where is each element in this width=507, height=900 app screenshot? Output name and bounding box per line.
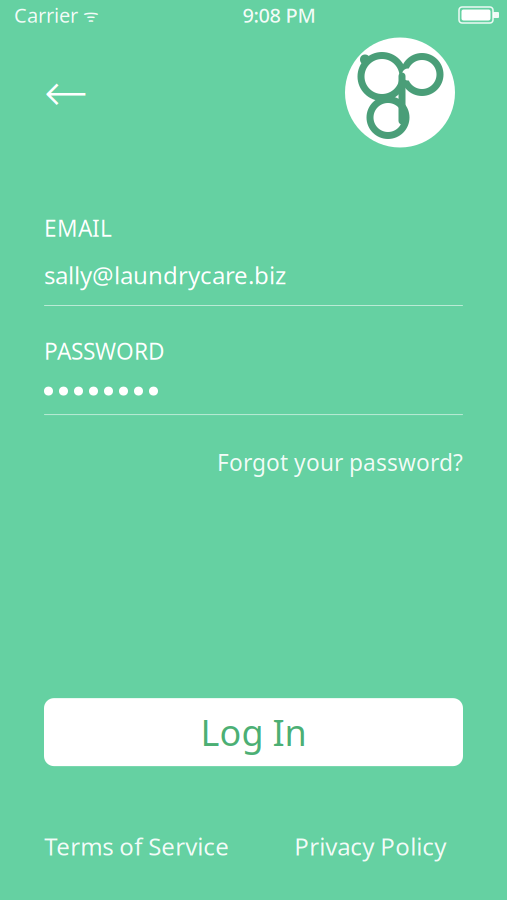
staticText: Log In (200, 708, 306, 756)
button[interactable]: Privacy Policy (253, 820, 487, 872)
staticText: 9:08 PM (242, 2, 315, 28)
staticText: Terms of Service (44, 830, 229, 862)
staticText: ᯤ (78, 3, 99, 26)
staticText: PASSWORD (44, 336, 165, 366)
staticText: Carrier (14, 2, 78, 28)
staticText: Privacy Policy (294, 830, 446, 862)
staticText: ← (43, 62, 88, 123)
button[interactable]: Forgot your password? (217, 439, 463, 485)
button[interactable]: Back (36, 62, 96, 122)
button[interactable]: Terms of Service (20, 820, 253, 872)
staticText: EMAIL (44, 213, 112, 243)
staticText: Forgot your password? (217, 447, 463, 477)
staticText: sally@laundrycare.biz (44, 259, 286, 291)
button[interactable]: Log In (44, 698, 463, 766)
